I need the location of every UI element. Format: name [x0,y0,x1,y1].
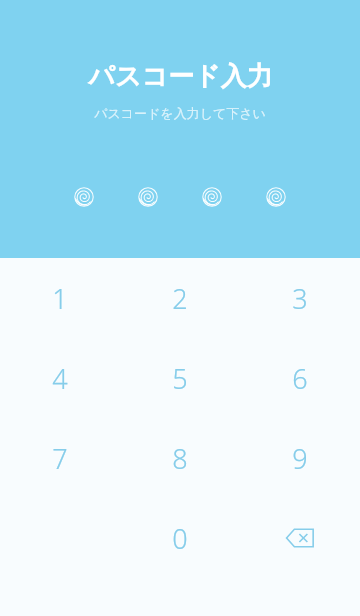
button[interactable]: 3 [240,258,360,338]
staticText: 4 [52,360,68,397]
staticText: 8 [172,440,188,477]
staticText: 1 [52,280,68,317]
staticText: 9 [292,440,308,477]
button[interactable]: 5 [120,338,240,418]
staticText: パスコード入力 [88,60,273,93]
button[interactable]: 9 [240,418,360,498]
staticText: 2 [172,280,188,317]
button[interactable]: 7 [0,418,120,498]
staticText: パスコードを入力して下さい [94,105,266,121]
staticText: 0 [172,520,188,557]
button[interactable]: 6 [240,338,360,418]
staticText: 5 [172,360,188,397]
button[interactable]: 8 [120,418,240,498]
staticText: 7 [52,440,68,477]
button[interactable]: 2 [120,258,240,338]
staticText: 6 [292,360,308,397]
button[interactable]: 1 [0,258,120,338]
button[interactable]: Backspace [240,498,360,578]
button[interactable]: 0 [120,498,240,578]
staticText: 3 [292,280,308,317]
button[interactable]: 4 [0,338,120,418]
